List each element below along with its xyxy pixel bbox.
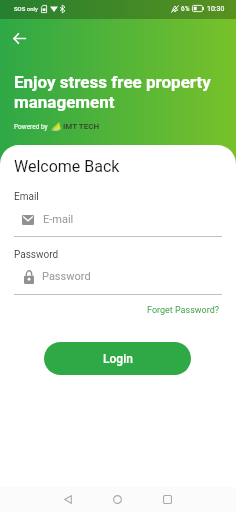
staticText: E-mail bbox=[43, 213, 74, 226]
staticText: Password bbox=[14, 249, 59, 261]
staticText: SOS only bbox=[14, 5, 38, 12]
button[interactable]: Back bbox=[5, 24, 33, 52]
staticText: Password bbox=[42, 270, 91, 283]
staticText: Email bbox=[14, 191, 39, 203]
button[interactable]: Back bbox=[55, 487, 80, 512]
staticText: 6% bbox=[181, 5, 190, 13]
staticText: Login bbox=[103, 352, 133, 366]
staticText: Enjoy stress free property management bbox=[14, 72, 227, 112]
button[interactable]: Login bbox=[44, 342, 191, 375]
staticText: Powered by bbox=[14, 123, 48, 131]
staticText: IMT TECH bbox=[63, 122, 100, 131]
staticText: Welcome Back bbox=[14, 157, 120, 176]
button[interactable]: Recent apps bbox=[155, 487, 180, 512]
staticText: 10:30 bbox=[207, 5, 225, 13]
button[interactable]: Home bbox=[105, 487, 130, 512]
button[interactable]: Forget Password? bbox=[139, 300, 236, 321]
